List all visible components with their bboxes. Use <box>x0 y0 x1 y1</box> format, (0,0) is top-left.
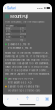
staticText: English <box>19 38 25 41</box>
staticText: ‹ <box>7 96 9 101</box>
staticText: ↑ <box>25 96 29 101</box>
staticText: Tokyo; on a clear day it is visible from… <box>5 65 50 68</box>
staticText: Mount Fuji is the tallest mountain in Ja… <box>5 51 50 54</box>
button[interactable]: Bookmarks <box>32 96 42 101</box>
staticText: ≈ <box>44 6 46 10</box>
button[interactable]: Tabs <box>42 96 52 101</box>
staticText: Listing <box>6 33 11 36</box>
staticText: Elevation <box>6 27 11 30</box>
staticText: ▯ <box>36 96 38 101</box>
staticText: Easiest route Yoshida Trail <box>8 85 40 88</box>
staticText: Last eruption 1707-08 <box>8 77 34 80</box>
staticText: Prominence 3,776 m <box>8 47 32 50</box>
staticText: a stratovolcano that last erupted in 170… <box>5 58 50 61</box>
staticText: Coordinates <box>6 35 11 38</box>
staticText: Mount Fuji <box>10 14 28 19</box>
staticText: Ultra <box>19 33 25 36</box>
staticText: 3,776 m <box>19 30 25 33</box>
button[interactable]: Share <box>23 96 32 101</box>
staticText: ▣ <box>45 96 49 101</box>
staticText: 3,776 m <box>19 27 25 30</box>
staticText: Prominence <box>6 30 11 33</box>
staticText: city. It is a Special Place of Scenic Be… <box>5 69 50 72</box>
staticText: 35°21′N <box>19 35 25 38</box>
staticText: Naming <box>6 38 11 41</box>
staticText: Elevation 3,776 m <box>8 43 30 46</box>
button[interactable]: Back to Safari <box>3 6 16 10</box>
staticText: and one of Japan's Three Holy Mountains. <box>5 72 50 75</box>
staticText: ••• <box>37 6 43 10</box>
staticText: Mountain type Stratovolcano <box>8 89 41 92</box>
button[interactable]: Forward <box>13 96 23 101</box>
staticText: Mount Fuji lies about 100 km southwest o… <box>5 62 50 65</box>
button[interactable]: Back <box>3 96 13 101</box>
staticText: › <box>17 96 19 101</box>
staticText: Highest point <box>6 24 17 27</box>
staticText: standing at 3,776 m. It is the single pe… <box>5 55 50 58</box>
staticText: First ascent 663 AD <box>8 81 32 84</box>
staticText: From Wikipedia, the free encyclopedia <box>5 20 44 23</box>
staticText: ‹ Safari <box>5 6 16 10</box>
